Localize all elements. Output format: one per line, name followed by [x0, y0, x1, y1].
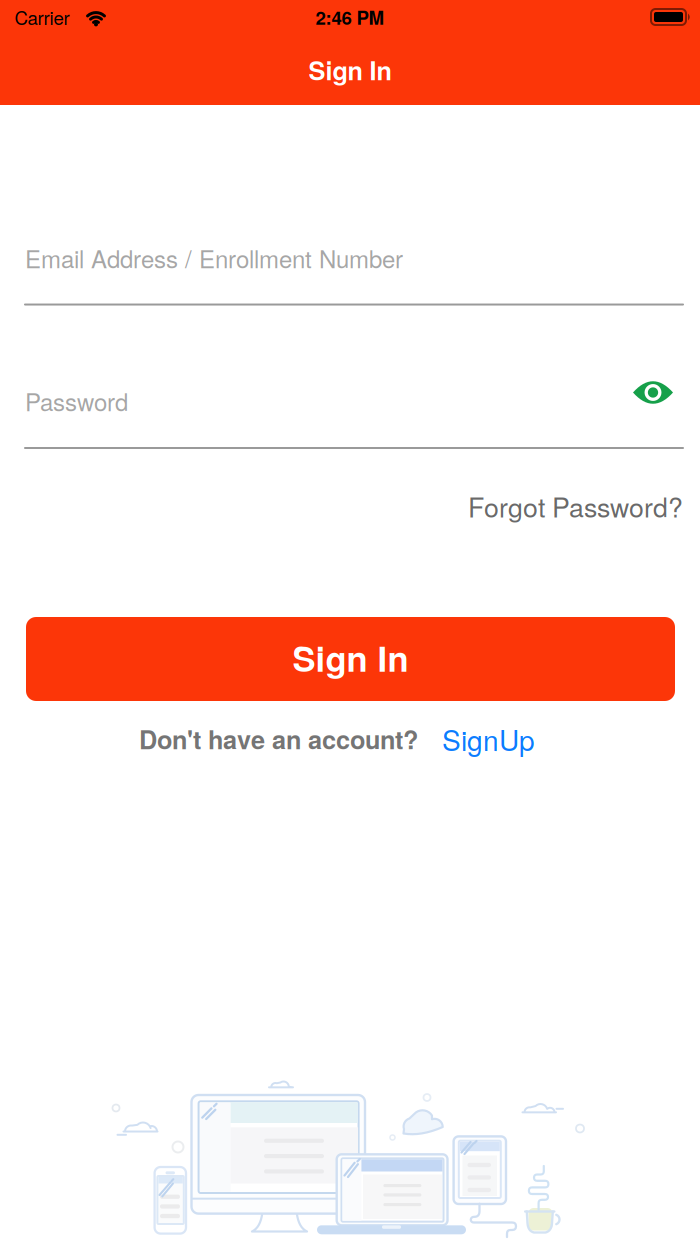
- staticText: Forgot Password?: [468, 487, 683, 525]
- button[interactable]: SignUp: [442, 719, 535, 759]
- staticText: Don't have an account?: [139, 721, 418, 757]
- staticText: Email Address / Enrollment Number: [25, 241, 403, 275]
- staticText: Carrier: [14, 4, 69, 30]
- button[interactable]: Sign In: [26, 617, 675, 701]
- staticText: 2:46 PM: [315, 4, 384, 30]
- staticText: SignUp: [442, 719, 535, 759]
- staticText: Sign In: [292, 633, 408, 682]
- textField[interactable]: Password: [25, 381, 683, 421]
- staticText: Password: [25, 384, 128, 418]
- textField[interactable]: Email Address / Enrollment Number: [25, 238, 683, 278]
- button[interactable]: Show password: [629, 376, 677, 408]
- staticText: Sign In: [308, 52, 391, 88]
- button[interactable]: Forgot Password?: [468, 487, 683, 525]
